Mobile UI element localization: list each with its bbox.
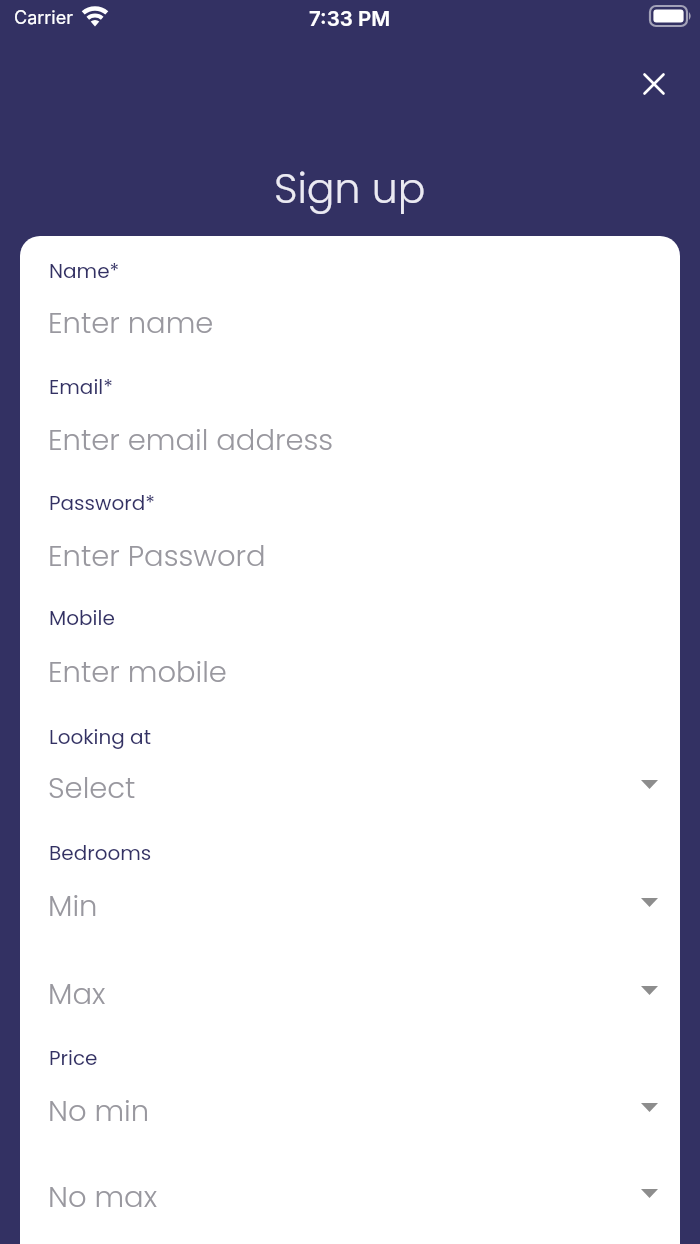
button[interactable]: Max bbox=[28, 964, 672, 1024]
button[interactable]: Enter name bbox=[28, 293, 672, 353]
staticText: No min bbox=[48, 1091, 150, 1132]
staticText: Password* bbox=[49, 489, 155, 517]
staticText: Carrier bbox=[14, 7, 74, 29]
button[interactable]: No min bbox=[28, 1081, 672, 1141]
button[interactable]: Enter email address bbox=[28, 410, 672, 470]
button[interactable]: Enter Password bbox=[28, 526, 672, 586]
button[interactable]: No max bbox=[28, 1167, 672, 1227]
button[interactable] bbox=[634, 64, 674, 104]
staticText: Bedrooms bbox=[49, 839, 152, 867]
staticText: Name* bbox=[49, 257, 120, 285]
staticText: No max bbox=[48, 1177, 158, 1218]
staticText: Mobile bbox=[49, 604, 115, 632]
staticText: Looking at bbox=[49, 723, 151, 751]
button[interactable]: Select bbox=[28, 758, 672, 818]
button[interactable]: Enter mobile bbox=[28, 642, 672, 702]
staticText: Enter name bbox=[48, 303, 214, 344]
staticText: Select bbox=[48, 768, 136, 809]
staticText: Enter email address bbox=[48, 420, 334, 461]
staticText: Sign up bbox=[274, 160, 426, 217]
staticText: Max bbox=[48, 974, 106, 1015]
staticText: Enter mobile bbox=[48, 652, 227, 693]
staticText: Enter Password bbox=[48, 536, 266, 577]
staticText: Email* bbox=[49, 373, 113, 401]
button[interactable]: Min bbox=[28, 876, 672, 936]
staticText: 7:33 PM bbox=[309, 6, 391, 31]
staticText: Min bbox=[48, 886, 98, 927]
staticText: Price bbox=[49, 1044, 98, 1072]
